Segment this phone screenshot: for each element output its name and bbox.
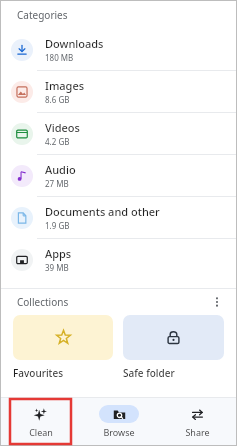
- button[interactable]: Documents and other: [1, 197, 236, 238]
- staticText: Collections: [17, 295, 69, 309]
- button[interactable]: Share: [158, 398, 236, 445]
- staticText: 39 MB: [45, 262, 69, 273]
- staticText: 4.2 GB: [45, 136, 70, 147]
- staticText: Images: [45, 78, 85, 93]
- staticText: 180 MB: [45, 52, 74, 63]
- staticText: Share: [185, 426, 210, 438]
- button[interactable]: Audio: [1, 155, 236, 196]
- staticText: 1.9 GB: [45, 220, 70, 231]
- button[interactable]: Videos: [1, 113, 236, 154]
- staticText: Browse: [103, 426, 135, 438]
- staticText: Categories: [17, 8, 68, 22]
- staticText: Safe folder: [123, 366, 175, 380]
- button[interactable]: Favourites: [13, 315, 113, 380]
- button[interactable]: Browse: [80, 398, 158, 445]
- staticText: Documents and other: [45, 204, 160, 219]
- staticText: Apps: [45, 246, 72, 261]
- staticText: Videos: [45, 120, 80, 135]
- staticText: Clean: [29, 426, 53, 438]
- staticText: Downloads: [45, 36, 104, 51]
- button[interactable]: More options: [206, 291, 228, 313]
- staticText: Favourites: [13, 366, 64, 380]
- button[interactable]: Apps: [1, 239, 236, 280]
- staticText: 8.6 GB: [45, 94, 70, 105]
- button[interactable]: Clean: [1, 398, 80, 445]
- button[interactable]: Images: [1, 71, 236, 112]
- staticText: 27 MB: [45, 178, 69, 189]
- button[interactable]: Downloads: [1, 29, 236, 70]
- staticText: Audio: [45, 162, 76, 177]
- button[interactable]: Safe folder: [123, 315, 224, 380]
